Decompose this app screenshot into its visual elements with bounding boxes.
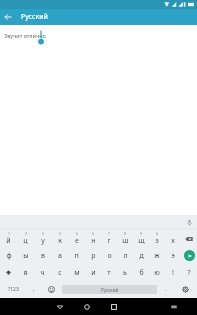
button[interactable]: Emoji (42, 281, 61, 298)
staticText: к (58, 236, 62, 246)
button[interactable]: 3 (34, 230, 51, 247)
staticText: а (58, 251, 62, 261)
button[interactable]: ю (149, 264, 165, 281)
staticText: 6 (92, 231, 94, 236)
staticText: ж (154, 251, 160, 261)
button[interactable]: Hide keyboard (160, 298, 187, 315)
staticText: 1 (8, 231, 10, 236)
button[interactable]: 5 (68, 230, 85, 247)
button[interactable]: Звучит отлично (4, 32, 197, 39)
staticText: ь (123, 268, 127, 278)
staticText: э (171, 251, 175, 261)
staticText: в (41, 251, 45, 261)
staticText: у (41, 236, 45, 246)
staticText: ! (172, 268, 174, 278)
staticText: е (75, 236, 79, 246)
button[interactable]: я (17, 264, 34, 281)
button[interactable]: . (158, 281, 174, 298)
staticText: ? (187, 268, 191, 278)
button[interactable]: 6 (85, 230, 101, 247)
button[interactable]: р (85, 247, 101, 264)
staticText: х (171, 236, 175, 246)
button[interactable]: п (68, 247, 85, 264)
button[interactable]: 0 (149, 230, 165, 247)
staticText: ?123 (8, 286, 19, 293)
staticText: . (165, 285, 167, 293)
staticText: н (91, 236, 96, 246)
button[interactable]: д (133, 247, 149, 264)
button[interactable]: Send (181, 247, 197, 264)
staticText: 8 (124, 231, 126, 236)
staticText: б (139, 268, 144, 278)
button[interactable]: 1 (0, 230, 17, 247)
button[interactable]: т (101, 264, 117, 281)
staticText: 4 (59, 231, 61, 236)
button[interactable]: ! (165, 264, 181, 281)
button[interactable]: ф (0, 247, 17, 264)
staticText: , (33, 285, 35, 293)
staticText: л (123, 251, 128, 261)
button[interactable]: Voice input (181, 215, 197, 230)
staticText: ю (154, 268, 160, 278)
staticText: с (58, 268, 62, 278)
staticText: 7 (108, 231, 110, 236)
button[interactable]: ч (34, 264, 51, 281)
staticText: й (6, 236, 11, 246)
button[interactable]: э (165, 247, 181, 264)
button[interactable]: м (68, 264, 85, 281)
button[interactable]: Shift (0, 264, 17, 281)
staticText: и (91, 268, 96, 278)
button[interactable]: , (26, 281, 42, 298)
button[interactable]: Back (0, 9, 16, 25)
staticText: д (139, 251, 144, 261)
button[interactable]: Recent apps (100, 298, 127, 315)
button[interactable]: о (101, 247, 117, 264)
staticText: ц (23, 236, 28, 246)
button[interactable]: Keyboard settings (174, 281, 197, 298)
button[interactable]: ь (117, 264, 133, 281)
button[interactable]: Backspace (181, 230, 197, 247)
button[interactable]: ы (17, 247, 34, 264)
button[interactable]: б (133, 264, 149, 281)
button[interactable]: 4 (51, 230, 68, 247)
staticText: ч (40, 268, 45, 278)
staticText: т (107, 268, 111, 278)
button[interactable]: ж (149, 247, 165, 264)
staticText: 3 (42, 231, 44, 236)
staticText: г (107, 236, 111, 246)
button[interactable]: с (51, 264, 68, 281)
staticText: з (155, 236, 159, 246)
staticText: 0 (156, 231, 158, 236)
staticText: Звучит отлично (4, 32, 46, 39)
staticText: Русский (21, 12, 48, 22)
button[interactable]: и (85, 264, 101, 281)
staticText: п (74, 251, 79, 261)
button[interactable]: а (51, 247, 68, 264)
staticText: 2 (25, 231, 27, 236)
button[interactable]: 2 (17, 230, 34, 247)
button[interactable]: Home (73, 298, 100, 315)
button[interactable]: х (165, 230, 181, 247)
staticText: о (107, 251, 112, 261)
staticText: 9 (140, 231, 142, 236)
button[interactable]: в (34, 247, 51, 264)
button[interactable]: 8 (117, 230, 133, 247)
staticText: я (23, 268, 28, 278)
button[interactable]: 9 (133, 230, 149, 247)
staticText: ы (23, 251, 29, 261)
staticText: м (74, 268, 80, 278)
staticText: ф (6, 251, 12, 261)
button[interactable]: Back (46, 298, 73, 315)
button[interactable]: л (117, 247, 133, 264)
staticText: ш (122, 236, 129, 246)
staticText: 5 (76, 231, 78, 236)
button[interactable]: 7 (101, 230, 117, 247)
staticText: р (91, 251, 96, 261)
staticText: щ (138, 236, 145, 246)
button[interactable]: Русский (62, 285, 157, 294)
button[interactable]: ?123 (0, 281, 26, 298)
staticText: Русский (101, 287, 119, 293)
button[interactable]: ? (181, 264, 197, 281)
